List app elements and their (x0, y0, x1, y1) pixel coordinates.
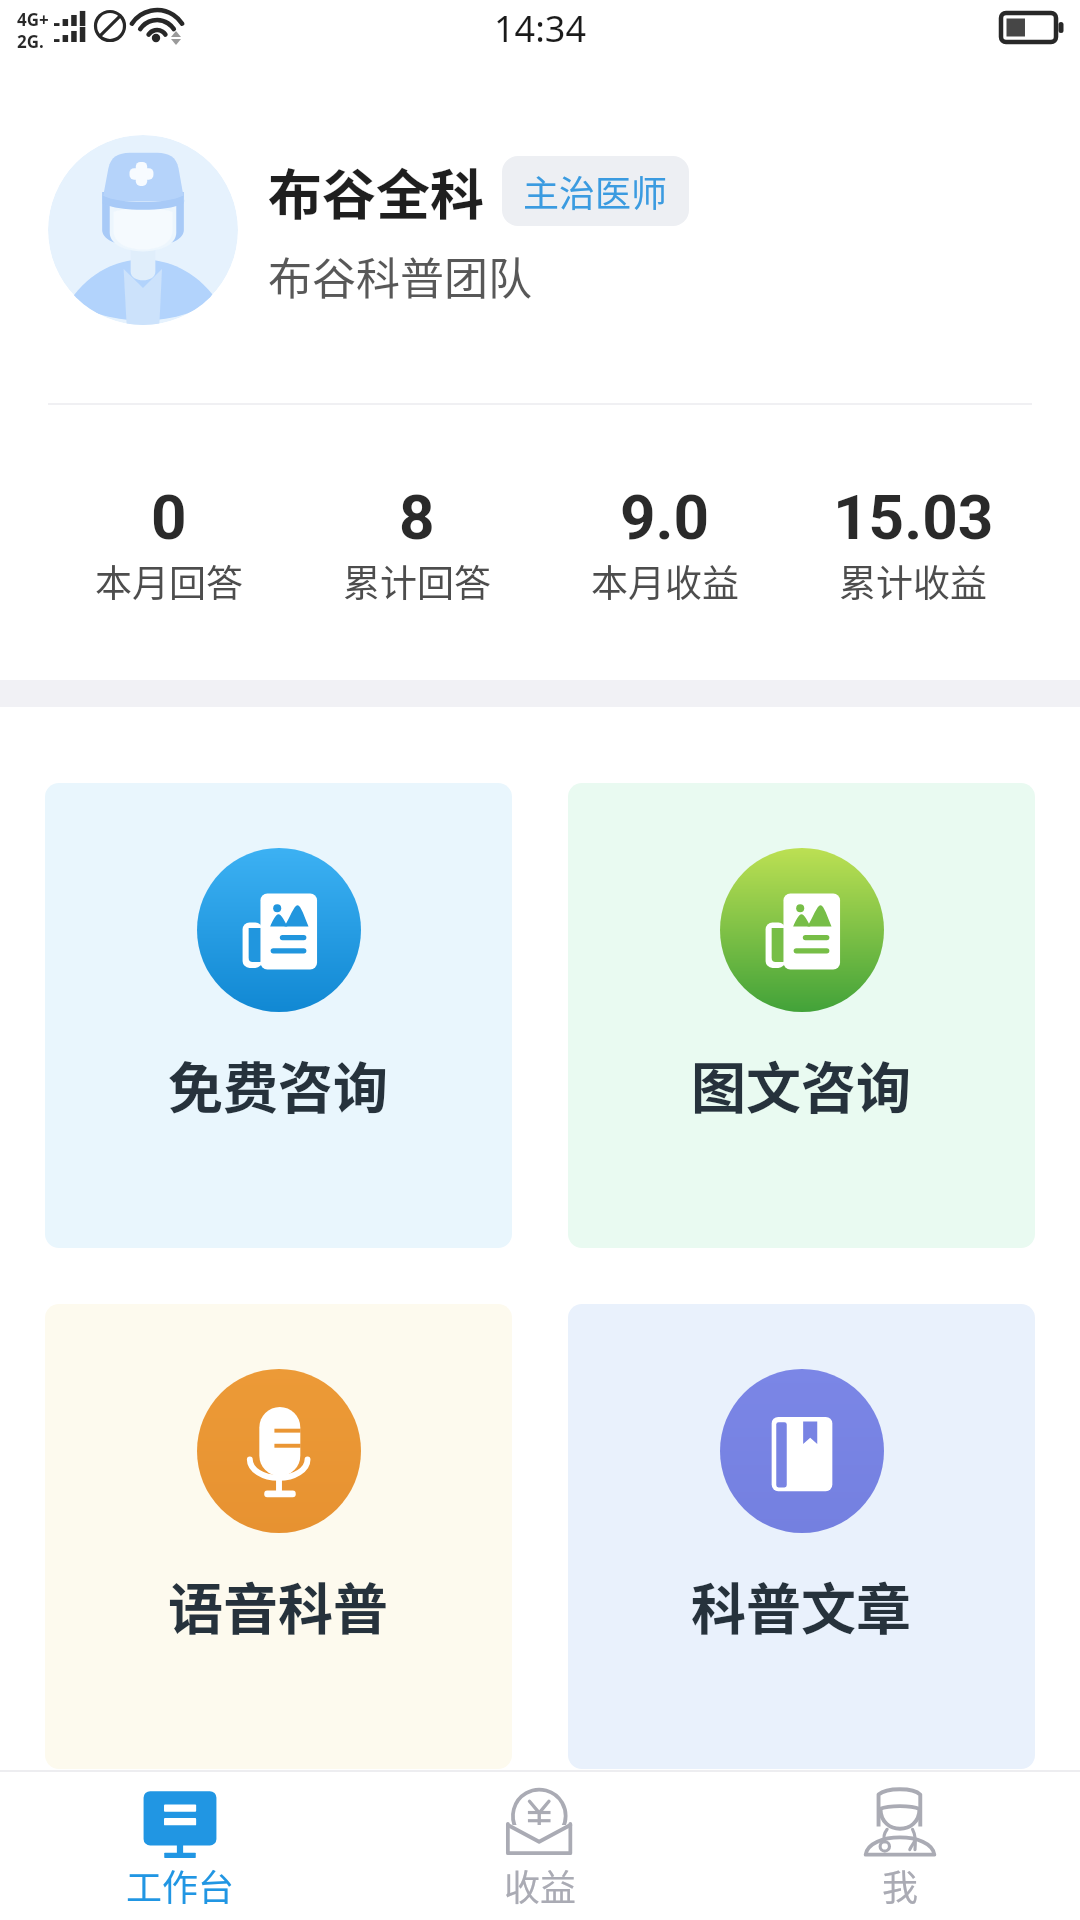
button[interactable]: 图文咨询 (568, 783, 1035, 1248)
staticText: 本月收益 (591, 554, 739, 608)
button[interactable]: 我 (720, 1772, 1080, 1920)
staticText: 15.03 (833, 481, 994, 554)
staticText: 9.0 (620, 481, 710, 554)
staticText: 语音科普 (168, 1565, 389, 1645)
staticText: 收益 (504, 1859, 577, 1911)
button[interactable]: 语音科普 (45, 1304, 512, 1769)
staticText: 2G. (17, 30, 44, 53)
staticText: 4G+ (17, 8, 49, 31)
staticText: 累计回答 (343, 554, 491, 608)
staticText: 布谷全科 (268, 152, 484, 230)
staticText: 工作台 (126, 1859, 235, 1911)
staticText: 图文咨询 (691, 1044, 912, 1124)
staticText: 累计收益 (839, 554, 987, 608)
staticText: 0 (151, 481, 187, 554)
button[interactable]: 科普文章 (568, 1304, 1035, 1769)
staticText: 科普文章 (691, 1565, 912, 1645)
button[interactable]: 免费咨询 (45, 783, 512, 1248)
staticText: 免费咨询 (168, 1044, 389, 1124)
staticText: 我 (882, 1859, 919, 1911)
button[interactable]: 收益 (360, 1772, 720, 1920)
button[interactable]: 布谷全科 主治医师 个人资料 (48, 135, 1080, 325)
staticText: 布谷科普团队 (268, 244, 532, 308)
button[interactable]: 工作台 (0, 1772, 360, 1920)
staticText: 主治医师 (523, 165, 668, 217)
staticText: 本月回答 (95, 554, 243, 608)
staticText: 14:34 (494, 4, 587, 53)
staticText: 8 (399, 481, 435, 554)
